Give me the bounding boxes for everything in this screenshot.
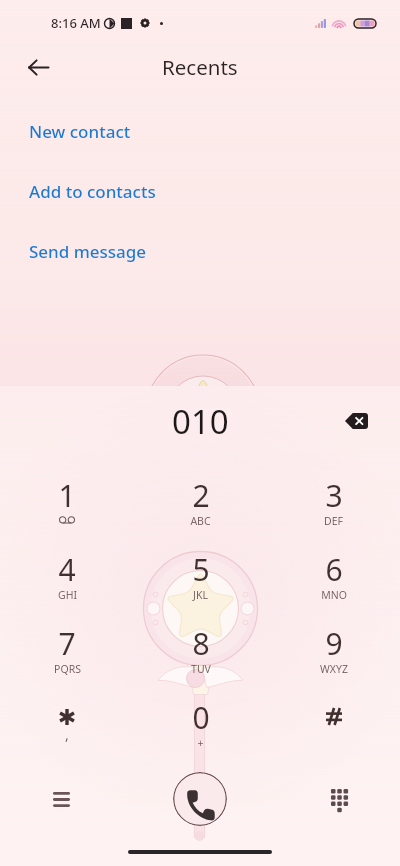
button[interactable]: 4 (0, 532, 134, 606)
button[interactable]: 1 (0, 458, 134, 532)
staticText: GHI (58, 588, 77, 602)
staticText: 4 (58, 549, 76, 590)
button[interactable]: 3 (267, 458, 400, 532)
button[interactable]: 9 (267, 606, 400, 680)
button[interactable]: 5 (134, 532, 267, 606)
button[interactable]: Backspace (334, 399, 378, 443)
staticText: 9 (325, 623, 343, 664)
staticText: Send message (29, 240, 147, 263)
button[interactable]: Send message (0, 240, 400, 263)
staticText: WXYZ (320, 662, 348, 676)
button[interactable]: 2 (134, 458, 267, 532)
staticText: ABC (190, 514, 211, 528)
button[interactable]: 8 (134, 606, 267, 680)
staticText: DEF (324, 514, 343, 528)
button[interactable]: Call (173, 772, 227, 826)
staticText: New contact (29, 120, 131, 143)
staticText: 5 (192, 549, 210, 590)
staticText: 7 (58, 623, 76, 664)
staticText: 3 (325, 475, 343, 516)
staticText: Add to contacts (29, 180, 156, 203)
staticText: 8:16 AM (51, 14, 101, 32)
staticText: TUV (191, 662, 211, 676)
staticText: + (197, 736, 204, 750)
button[interactable] (267, 680, 400, 754)
staticText: 1 (58, 475, 76, 516)
button[interactable]: New contact (0, 120, 400, 143)
button[interactable]: Call log menu (38, 776, 84, 822)
button[interactable]: , (0, 680, 134, 754)
button[interactable]: Add to contacts (0, 180, 400, 203)
staticText: JKL (193, 588, 208, 602)
button[interactable]: 0 (134, 680, 267, 754)
button[interactable]: Dialpad (316, 776, 362, 822)
button[interactable]: 6 (267, 532, 400, 606)
staticText: MNO (321, 588, 347, 602)
staticText: 8 (192, 623, 210, 664)
staticText: , (65, 725, 69, 744)
staticText: PQRS (54, 662, 81, 676)
staticText: 2 (192, 475, 210, 516)
button[interactable]: Back (14, 46, 62, 88)
button[interactable]: 7 (0, 606, 134, 680)
staticText: Recents (162, 53, 238, 81)
staticText: 010 (172, 399, 229, 444)
staticText: 0 (192, 697, 210, 738)
staticText: 6 (325, 549, 343, 590)
